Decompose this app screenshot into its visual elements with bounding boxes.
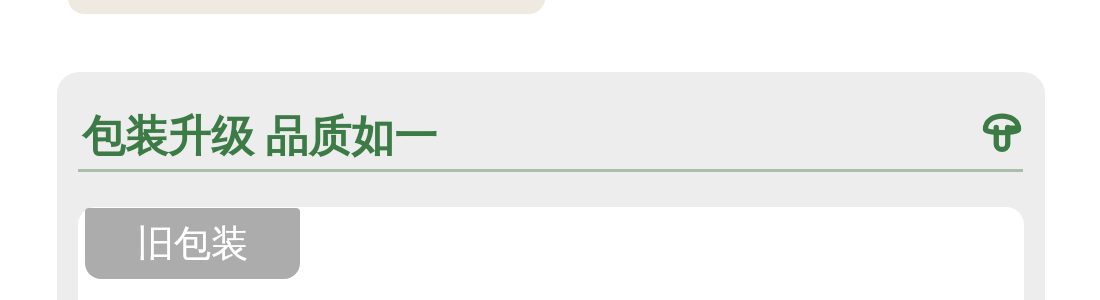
staticText: 旧包装 xyxy=(137,220,248,267)
button[interactable]: Mushroom brand mark xyxy=(979,108,1025,154)
staticText: 包装升级 品质如一 xyxy=(82,105,438,164)
button[interactable]: 旧包装 xyxy=(85,208,300,279)
button[interactable]: 包装升级 品质如一 xyxy=(57,72,1045,300)
